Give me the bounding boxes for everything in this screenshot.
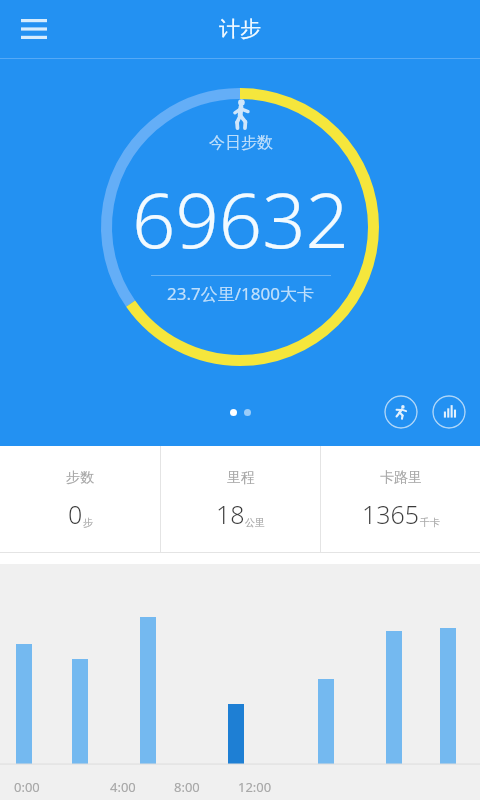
staticText: 1365 bbox=[362, 497, 420, 531]
staticText: 计步 bbox=[219, 16, 261, 42]
staticText: 今日步数 bbox=[209, 133, 273, 153]
staticText: 23.7公里/1800大卡 bbox=[167, 282, 314, 305]
button[interactable]: Menu bbox=[10, 5, 58, 53]
staticText: 4:00 bbox=[110, 778, 136, 796]
staticText: 卡路里 bbox=[380, 469, 422, 487]
staticText: 千卡 bbox=[420, 516, 440, 529]
staticText: 步数 bbox=[66, 469, 94, 487]
button[interactable]: 里程 bbox=[161, 446, 320, 553]
button[interactable]: Run bbox=[384, 395, 418, 429]
staticText: 0 bbox=[68, 497, 83, 531]
staticText: 12:00 bbox=[238, 778, 272, 796]
staticText: 69632 bbox=[132, 167, 349, 271]
button[interactable]: 步数 bbox=[0, 446, 160, 553]
button[interactable]: Statistics bbox=[432, 395, 466, 429]
staticText: 步 bbox=[83, 516, 93, 529]
staticText: 8:00 bbox=[174, 778, 200, 796]
staticText: 0:00 bbox=[14, 778, 40, 796]
staticText: 里程 bbox=[227, 469, 255, 487]
staticText: 18 bbox=[216, 497, 245, 531]
button[interactable]: 卡路里 bbox=[321, 446, 480, 553]
staticText: 公里 bbox=[245, 516, 265, 529]
